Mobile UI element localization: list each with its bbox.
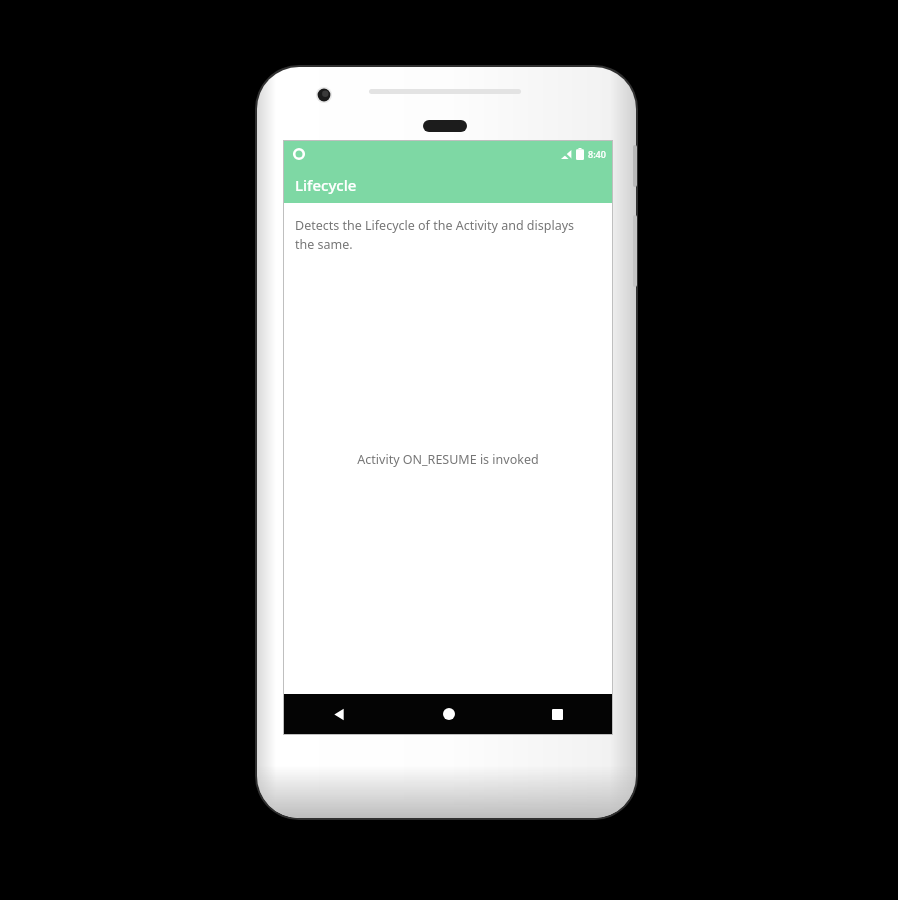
button[interactable]: Lifecycle (284, 166, 612, 203)
staticText: Detects the Lifecycle of the Activity an… (295, 217, 590, 253)
button[interactable]: Home (394, 694, 503, 734)
staticText: Activity ON_RESUME is invoked (357, 451, 539, 468)
button[interactable]: Back (284, 694, 394, 734)
button[interactable]: Recent apps (503, 694, 612, 734)
staticText: Lifecycle (295, 175, 357, 195)
staticText: 8:40 (588, 148, 606, 160)
other: Notification (293, 148, 305, 160)
